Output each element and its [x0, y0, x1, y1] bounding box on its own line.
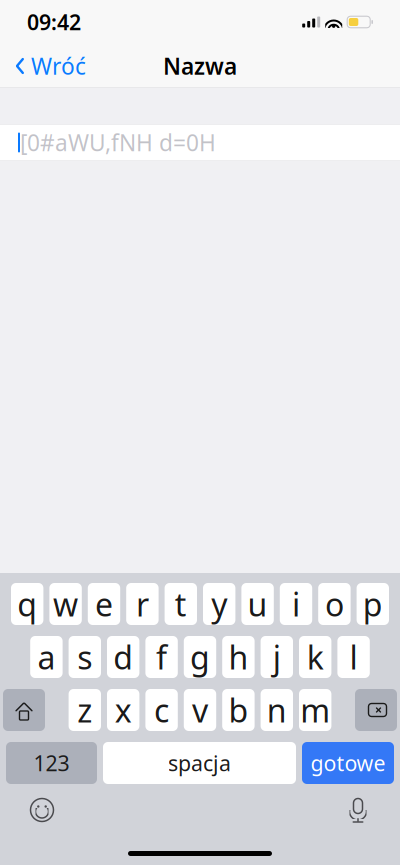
button[interactable]: g [184, 636, 216, 678]
staticText: 09:42 [27, 8, 81, 36]
button[interactable]: t [165, 583, 197, 625]
staticText: t [175, 583, 187, 625]
button[interactable]: b [222, 689, 255, 731]
staticText: r [136, 583, 149, 625]
button[interactable]: r [126, 583, 159, 625]
staticText: e [95, 583, 113, 625]
staticText: n [267, 689, 287, 731]
staticText: [0#aWU,fNH d=0H [20, 127, 216, 157]
button[interactable]: p [357, 583, 389, 625]
staticText: l [350, 636, 358, 678]
staticText: s [77, 636, 92, 678]
button[interactable]: u [241, 583, 274, 625]
button[interactable]: e [88, 583, 120, 625]
staticText: c [154, 689, 169, 731]
button[interactable]: v [184, 689, 216, 731]
staticText: y [211, 583, 227, 625]
button[interactable]: i [280, 583, 312, 625]
button[interactable]: l [337, 636, 370, 678]
button[interactable]: q [11, 583, 43, 625]
button[interactable]: y [203, 583, 235, 625]
button[interactable]: spacja [103, 742, 296, 784]
button[interactable]: 123 [6, 742, 97, 784]
staticText: i [292, 583, 300, 625]
button[interactable]: s [69, 636, 101, 678]
staticText: z [77, 689, 92, 731]
staticText: h [228, 636, 248, 678]
button[interactable]: d [107, 636, 139, 678]
staticText: m [300, 689, 330, 731]
button[interactable]: Dyktowanie [336, 790, 380, 830]
button[interactable]: k [299, 636, 331, 678]
staticText: j [273, 636, 281, 678]
staticText: Nazwa [163, 51, 237, 81]
staticText: a [37, 636, 55, 678]
staticText: u [248, 583, 268, 625]
button[interactable]: z [69, 689, 101, 731]
button[interactable]: h [222, 636, 255, 678]
button[interactable]: f [145, 636, 178, 678]
button[interactable]: gotowe [302, 742, 394, 784]
staticText: 123 [33, 749, 69, 777]
button[interactable]: w [49, 583, 82, 625]
staticText: gotowe [310, 749, 385, 777]
button[interactable]: x [107, 689, 139, 731]
staticText: k [307, 636, 324, 678]
button[interactable]: n [261, 689, 293, 731]
button[interactable]: o [318, 583, 351, 625]
button[interactable]: Shift [3, 689, 45, 731]
staticText: x [115, 689, 132, 731]
button[interactable]: c [145, 689, 178, 731]
staticText: q [17, 583, 37, 625]
button[interactable]: Usuń [355, 689, 397, 731]
button[interactable]: Emoji [20, 790, 64, 830]
staticText: d [113, 636, 133, 678]
button[interactable]: Wróć [0, 44, 100, 88]
staticText: spacja [168, 749, 231, 777]
staticText: g [190, 636, 210, 678]
button[interactable]: a [30, 636, 63, 678]
staticText: Wróć [31, 51, 86, 81]
staticText: f [156, 636, 167, 678]
button[interactable]: j [261, 636, 293, 678]
staticText: o [325, 583, 344, 625]
button[interactable]: m [299, 689, 331, 731]
staticText: b [228, 689, 248, 731]
staticText: p [363, 583, 383, 625]
staticText: v [192, 689, 208, 731]
button[interactable]: [0#aWU,fNH d=0H [0, 124, 400, 161]
staticText: w [53, 583, 78, 625]
